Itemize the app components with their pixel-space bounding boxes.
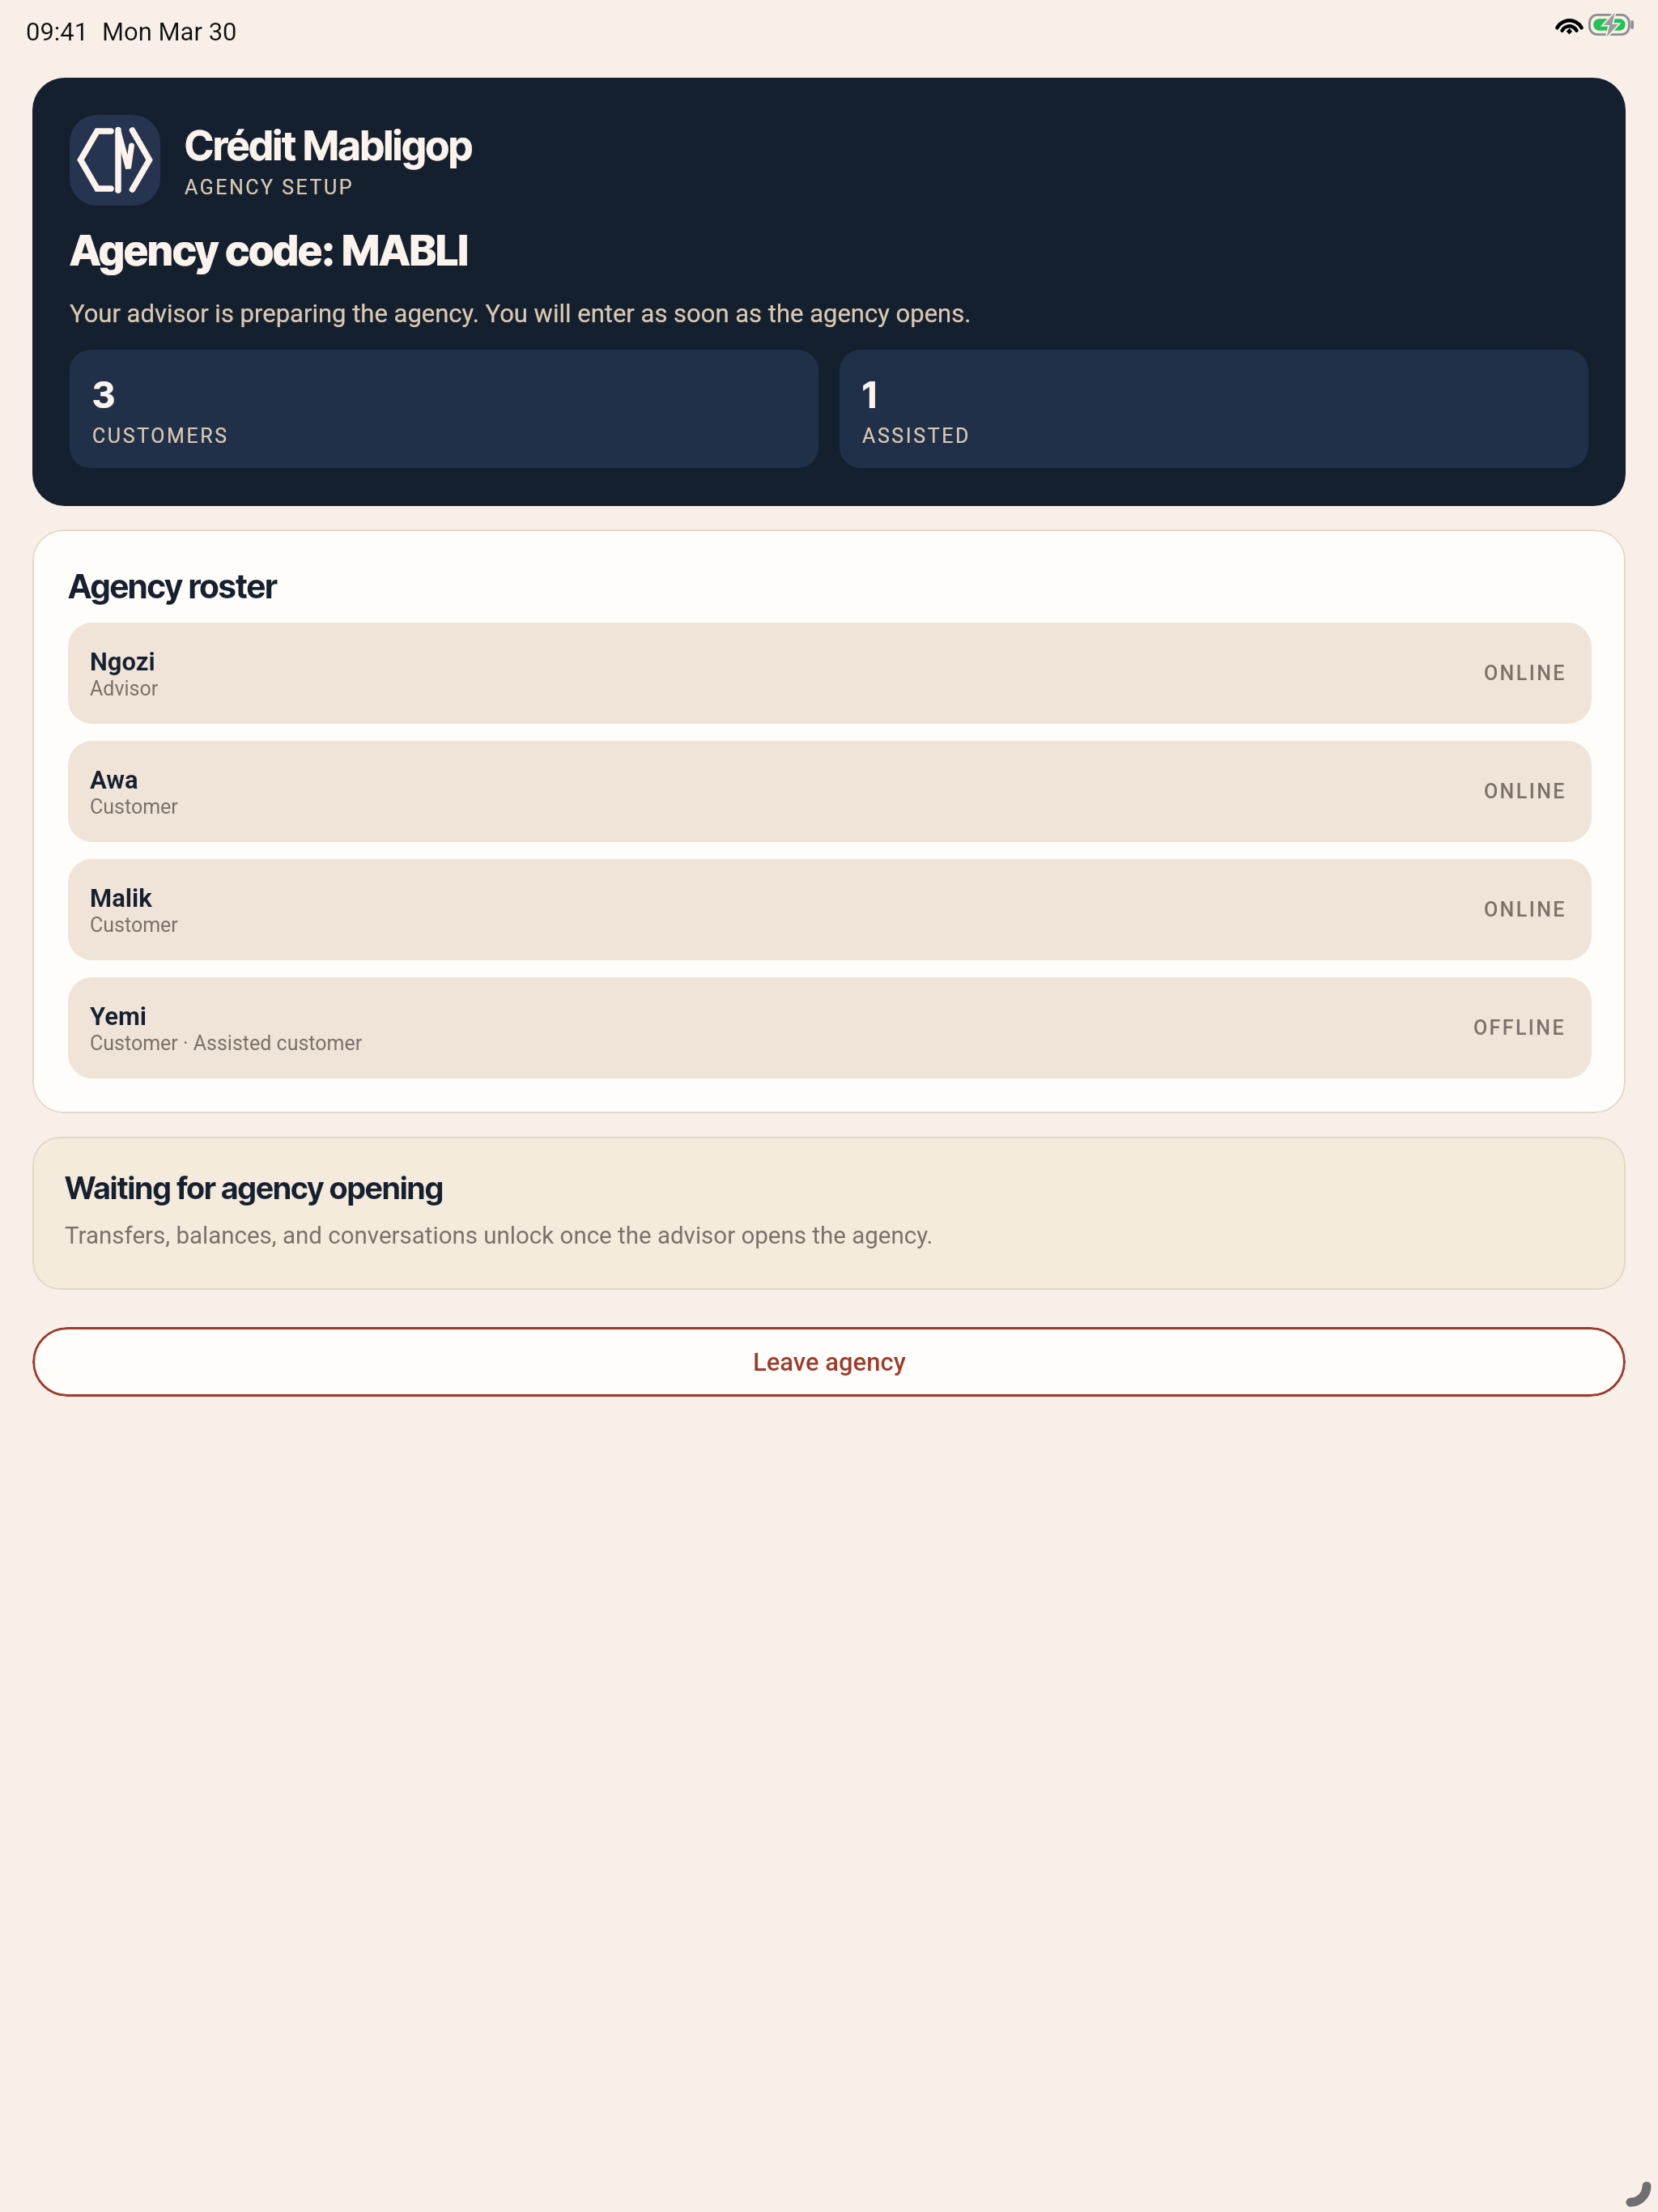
button[interactable]: Ngozi xyxy=(68,623,1592,724)
staticText: Customer · Assisted customer xyxy=(90,1032,363,1055)
staticText: ASSISTED xyxy=(862,424,971,448)
staticText: AGENCY SETUP xyxy=(185,176,354,199)
staticText: CUSTOMERS xyxy=(92,424,229,448)
staticText: Advisor xyxy=(90,677,159,700)
staticText: Transfers, balances, and conversations u… xyxy=(65,1222,933,1250)
staticText: 3 xyxy=(92,372,116,416)
button[interactable]: Malik xyxy=(68,859,1592,960)
staticText: Awa xyxy=(90,765,138,794)
button[interactable]: Yemi xyxy=(68,977,1592,1078)
staticText: 09:41 xyxy=(26,17,89,46)
staticText: Ngozi xyxy=(90,647,155,676)
staticText: Yemi xyxy=(90,1002,147,1031)
staticText: Customer xyxy=(90,795,178,819)
other: Battery charging xyxy=(1588,14,1634,36)
button[interactable]: 1 xyxy=(840,350,1588,468)
staticText: OFFLINE xyxy=(1473,1016,1567,1040)
staticText: Leave agency xyxy=(753,1347,906,1376)
staticText: Customer xyxy=(90,913,178,937)
button[interactable]: Leave agency xyxy=(32,1327,1626,1397)
button[interactable]: 3 xyxy=(70,350,818,468)
staticText: Mon Mar 30 xyxy=(102,17,237,46)
staticText: ONLINE xyxy=(1484,898,1567,921)
staticText: ONLINE xyxy=(1484,780,1567,803)
staticText: Crédit Mabligop xyxy=(185,121,473,170)
staticText: Your advisor is preparing the agency. Yo… xyxy=(70,299,971,328)
staticText: Agency roster xyxy=(68,566,277,606)
other: Wi-Fi signal xyxy=(1558,16,1581,34)
staticText: Waiting for agency opening xyxy=(65,1169,444,1206)
staticText: Agency code: MABLI xyxy=(70,225,469,276)
staticText: Malik xyxy=(90,883,152,912)
staticText: 1 xyxy=(862,372,877,416)
staticText: ONLINE xyxy=(1484,661,1567,685)
button[interactable]: Awa xyxy=(68,741,1592,842)
